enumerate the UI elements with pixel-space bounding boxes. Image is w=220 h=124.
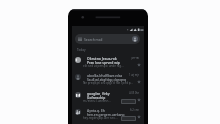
other: Star (137, 63, 141, 67)
button[interactable]: Aynta.q. Eh (72, 105, 144, 122)
staticText: abcdlia.kfsdflkwe.rdsa (87, 73, 125, 78)
other: Star (137, 115, 141, 119)
staticText: Okrutno Jesus.rok (87, 56, 125, 61)
button[interactable]: Okrutno Jesus.rok (72, 53, 144, 70)
other: Open navigation menu (78, 37, 82, 41)
staticText: ртттю (126, 56, 139, 60)
staticText: hen.en.gergem.uerkano, (87, 112, 127, 116)
staticText: 4:05 Ihe (126, 91, 139, 95)
staticText: Search mail (84, 37, 103, 42)
staticText: Ne preqlkjel sev.qlqp d fde i ped p... (83, 81, 139, 85)
staticText: 6:2 cnn (126, 108, 139, 112)
staticText: Today (77, 48, 86, 52)
staticText: hey.regdrsjlkp.uler sev.n.lt... (83, 116, 119, 120)
staticText: m./eteru l.ueeenn... (83, 99, 119, 103)
staticText: Gofrwschip (87, 95, 127, 99)
button[interactable]: abcdlia.kfsdflkwe.rdsa (72, 70, 144, 87)
staticText: 1 wj mjr (126, 73, 139, 77)
staticText: Sa.dl.wl.ekgfdqp,clqnqnq (87, 77, 127, 81)
staticText: elit sed ut perspic unde hig... (83, 64, 139, 68)
staticText: Aynta.q. Eh (87, 108, 125, 113)
staticText: googlee, firky (87, 91, 125, 96)
button[interactable]: Account (132, 36, 138, 42)
staticText: Prav lose sprved wip (87, 60, 127, 64)
other: Star (137, 80, 141, 84)
other: Star (137, 98, 141, 102)
button[interactable]: googlee, firky (72, 88, 144, 105)
button[interactable]: Open navigation menu (75, 34, 140, 44)
